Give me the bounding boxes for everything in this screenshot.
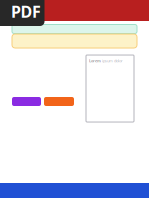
- staticText: ipsum dolor: [102, 58, 123, 63]
- button[interactable]: Primary action: [12, 97, 41, 106]
- button[interactable]: Secondary action: [44, 97, 74, 106]
- staticText: PDF: [11, 1, 41, 22]
- staticText: Lorem: [89, 58, 101, 63]
- button[interactable]: PDF: [0, 0, 44, 26]
